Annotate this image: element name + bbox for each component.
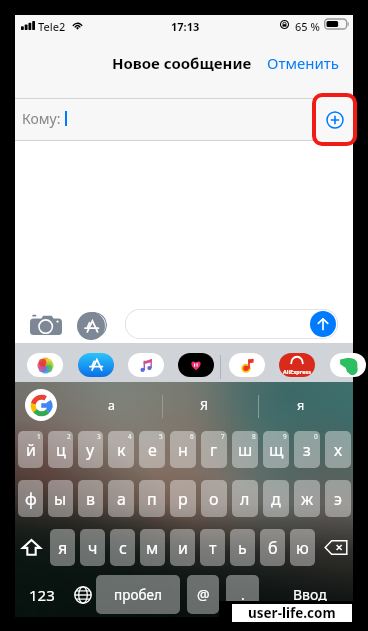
button[interactable]: App	[178, 353, 214, 377]
staticText: щ	[269, 439, 284, 461]
staticText: пробел	[114, 586, 162, 604]
button[interactable]: 123	[19, 575, 65, 614]
staticText: у	[86, 439, 95, 461]
staticText: 9	[283, 432, 287, 441]
button[interactable]: щ	[263, 431, 289, 468]
button[interactable]: п	[139, 480, 165, 517]
button[interactable]: ж	[294, 480, 320, 517]
staticText: 17:13	[171, 19, 200, 34]
staticText: ь	[238, 537, 247, 559]
staticText: 7	[221, 432, 225, 441]
button[interactable]: ф	[18, 480, 43, 517]
staticText: к	[117, 439, 126, 461]
button[interactable]: р	[170, 480, 196, 517]
staticText: @	[197, 585, 210, 604]
button[interactable]: л	[232, 480, 258, 517]
staticText: з	[303, 439, 311, 461]
button[interactable]: м	[140, 529, 165, 566]
button[interactable]: Camera	[30, 313, 62, 336]
staticText: 6	[190, 432, 194, 441]
button[interactable]: Ввод	[280, 575, 340, 614]
button[interactable]: App	[27, 353, 63, 377]
button[interactable]: Add contact	[316, 97, 353, 142]
staticText: AliExpress	[283, 368, 311, 375]
staticText: е	[148, 439, 157, 461]
button[interactable]: ь	[230, 529, 255, 566]
staticText: 65 %	[295, 19, 320, 34]
button[interactable]: у	[78, 431, 103, 468]
button[interactable]: Backspace	[320, 529, 351, 566]
button[interactable]: а	[81, 385, 141, 425]
staticText: о	[209, 488, 219, 510]
staticText: Новое сообщение	[112, 53, 252, 73]
button[interactable]: ц	[48, 431, 73, 468]
button[interactable]: Switch language	[65, 575, 100, 614]
button[interactable]: App	[279, 353, 315, 377]
staticText: я	[58, 537, 68, 559]
staticText: 123	[29, 585, 55, 605]
button[interactable]: Google search	[25, 389, 57, 421]
button[interactable]: г	[201, 431, 227, 468]
staticText: й	[26, 439, 36, 461]
button[interactable]: з	[294, 431, 320, 468]
button[interactable]: .	[226, 575, 259, 614]
staticText: г	[210, 439, 218, 461]
staticText: .	[241, 585, 245, 604]
staticText: п	[147, 488, 157, 510]
button[interactable]: х	[325, 431, 351, 468]
button[interactable]: Я	[174, 385, 234, 425]
staticText: ч	[88, 537, 98, 559]
staticText: ш	[238, 439, 253, 461]
staticText: ф	[25, 488, 37, 510]
button[interactable]: я	[50, 529, 75, 566]
staticText: х	[334, 439, 343, 461]
button[interactable]: б	[260, 529, 285, 566]
staticText: 8	[252, 432, 256, 441]
button[interactable]: в	[78, 480, 103, 517]
staticText: л	[240, 488, 250, 510]
staticText: а	[108, 397, 115, 414]
staticText: н	[178, 439, 188, 461]
staticText: Кому:	[22, 109, 61, 128]
button[interactable]: App Store	[77, 312, 105, 340]
button[interactable]: ы	[48, 480, 73, 517]
button[interactable]: App	[78, 353, 114, 377]
staticText: 0	[314, 432, 318, 441]
staticText: и	[178, 537, 188, 559]
staticText: в	[86, 488, 96, 510]
button[interactable]: о	[201, 480, 227, 517]
staticText: 5	[159, 432, 163, 441]
other: Send	[310, 311, 336, 337]
button[interactable]: Send	[125, 309, 338, 339]
button[interactable]: ю	[290, 529, 315, 566]
button[interactable]: й	[18, 431, 43, 468]
button[interactable]: я	[271, 385, 331, 425]
button[interactable]: Отменить	[267, 53, 339, 73]
button[interactable]: э	[325, 480, 351, 517]
button[interactable]: ш	[232, 431, 258, 468]
button[interactable]: пробел	[96, 575, 180, 614]
button[interactable]: App	[128, 353, 164, 377]
staticText: 2	[67, 432, 71, 441]
staticText: ц	[56, 439, 66, 461]
button[interactable]: @	[187, 575, 219, 614]
button[interactable]: App	[229, 353, 265, 377]
staticText: Я	[200, 397, 208, 414]
button[interactable]: с	[110, 529, 135, 566]
button[interactable]: к	[108, 431, 134, 468]
staticText: б	[268, 537, 278, 559]
button[interactable]: т	[200, 529, 225, 566]
button[interactable]: App	[330, 353, 366, 377]
staticText: 1	[37, 432, 41, 441]
staticText: д	[271, 488, 281, 510]
staticText: с	[119, 537, 127, 559]
button[interactable]: д	[263, 480, 289, 517]
button[interactable]: и	[170, 529, 195, 566]
staticText: э	[334, 488, 342, 510]
button[interactable]: Shift	[18, 529, 45, 566]
button[interactable]: ч	[80, 529, 105, 566]
button[interactable]: а	[108, 480, 134, 517]
staticText: 3	[97, 432, 101, 441]
button[interactable]: е	[139, 431, 165, 468]
button[interactable]: н	[170, 431, 196, 468]
